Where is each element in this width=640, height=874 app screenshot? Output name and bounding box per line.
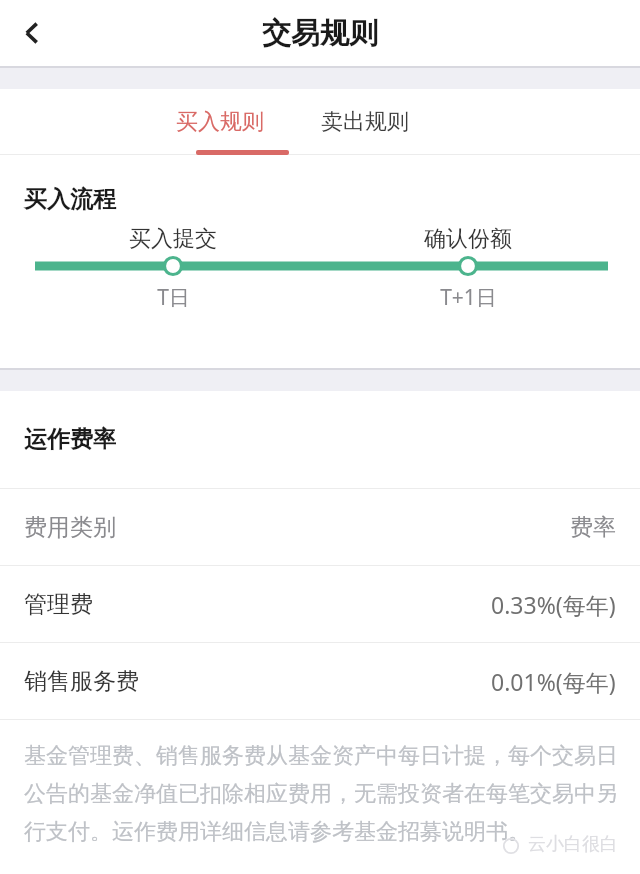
- staticText: 费率: [570, 513, 616, 542]
- staticText: 费用类别: [24, 513, 116, 542]
- staticText: 卖出规则: [321, 108, 409, 136]
- button[interactable]: 销售服务费: [0, 643, 640, 719]
- staticText: 买入流程: [24, 185, 116, 214]
- staticText: T日: [157, 283, 190, 312]
- staticText: 交易规则: [262, 15, 378, 52]
- staticText: 买入提交: [129, 225, 217, 253]
- staticText: 买入规则: [176, 108, 264, 136]
- staticText: T+1日: [440, 283, 497, 312]
- staticText: 0.33%(每年): [491, 589, 616, 620]
- button[interactable]: 卖出规则: [290, 89, 440, 155]
- staticText: 运作费率: [24, 425, 116, 454]
- staticText: 云小白很白: [528, 833, 618, 856]
- staticText: 0.01%(每年): [491, 666, 616, 697]
- button[interactable]: Back: [0, 1, 64, 65]
- button[interactable]: 管理费: [0, 566, 640, 642]
- staticText: 基金管理费、销售服务费从基金资产中每日计提，每个交易日公告的基金净值已扣除相应费…: [24, 742, 618, 846]
- staticText: 确认份额: [424, 225, 512, 253]
- staticText: 管理费: [24, 590, 93, 619]
- button[interactable]: 费用类别: [0, 489, 640, 565]
- button[interactable]: 买入规则: [150, 89, 290, 155]
- staticText: 销售服务费: [24, 667, 139, 696]
